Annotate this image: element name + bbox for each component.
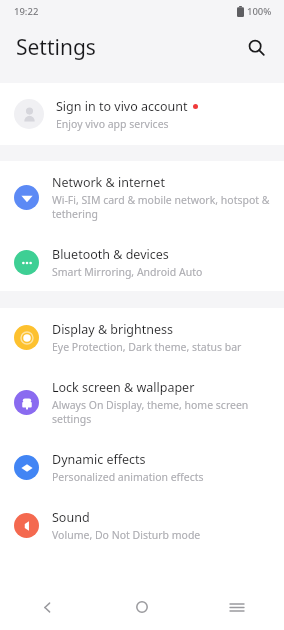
button[interactable]: Recent apps	[189, 584, 284, 630]
staticText: Sound	[52, 509, 90, 526]
staticText: Wi-Fi, SIM card & mobile network, hotspo…	[52, 193, 270, 221]
button[interactable]: Lock screen & wallpaper	[0, 366, 284, 438]
button[interactable]: Sign in to vivo account	[0, 83, 284, 145]
staticText: 19:22	[14, 5, 39, 18]
staticText: Network & internet	[52, 174, 165, 191]
staticText: Settings	[16, 33, 96, 62]
staticText: 100%	[247, 5, 272, 18]
staticText: Dynamic effects	[52, 451, 146, 468]
button[interactable]: Home	[94, 584, 189, 630]
button[interactable]: Dynamic effects	[0, 438, 284, 496]
button[interactable]: Sound	[0, 496, 284, 554]
staticText: Smart Mirroring, Android Auto	[52, 265, 203, 279]
staticText: Volume, Do Not Disturb mode	[52, 528, 201, 542]
staticText: Sign in to vivo account	[56, 98, 188, 115]
staticText: Always On Display, theme, home screen se…	[52, 398, 249, 426]
staticText: Bluetooth & devices	[52, 246, 169, 263]
staticText: Personalized animation effects	[52, 470, 204, 484]
button[interactable]: Search	[238, 29, 274, 65]
staticText: Lock screen & wallpaper	[52, 379, 195, 396]
staticText: Display & brightness	[52, 321, 174, 338]
button[interactable]: Bluetooth & devices	[0, 233, 284, 291]
button[interactable]: Back	[0, 584, 94, 630]
staticText: Eye Protection, Dark theme, status bar	[52, 340, 242, 354]
button[interactable]: Network & internet	[0, 161, 284, 233]
button[interactable]: Display & brightness	[0, 308, 284, 366]
staticText: Enjoy vivo app services	[56, 117, 169, 131]
